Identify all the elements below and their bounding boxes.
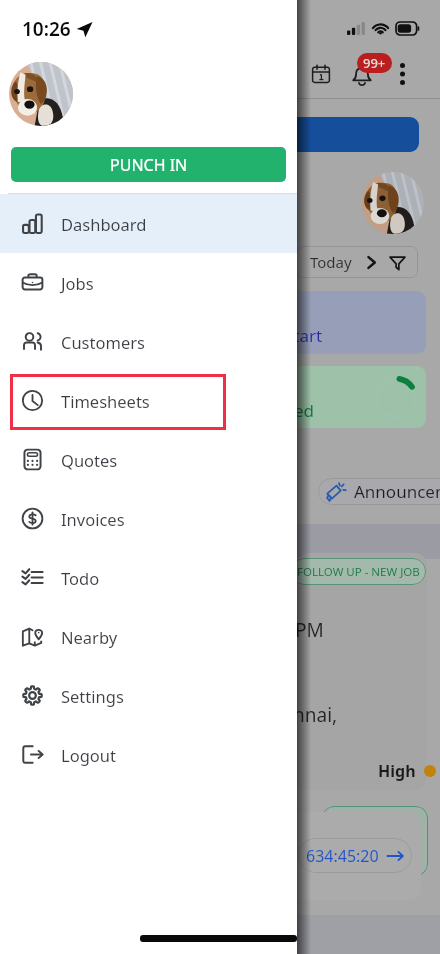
staticText: Quotes	[61, 449, 118, 471]
button[interactable]: Todo	[0, 548, 297, 607]
staticText: 10:26	[22, 16, 71, 42]
button[interactable]: Today	[296, 246, 418, 278]
staticText: PM	[295, 617, 324, 643]
staticText: Settings	[61, 685, 124, 707]
staticText: Todo	[61, 567, 100, 589]
button[interactable]: PUNCH IN	[11, 147, 286, 182]
button[interactable]: Calendar	[308, 61, 334, 87]
staticText: PUNCH IN	[110, 154, 188, 176]
button[interactable]: 634:45:20	[298, 838, 412, 873]
staticText: nnai,	[293, 702, 338, 728]
button[interactable]: Settings	[0, 666, 297, 725]
button[interactable]: Dashboard	[0, 194, 297, 253]
staticText: Dashboard	[61, 213, 147, 235]
button[interactable]: Notifications	[348, 61, 376, 89]
staticText: Jobs	[61, 272, 94, 294]
staticText: Start	[284, 324, 323, 347]
button[interactable]: Quotes	[0, 430, 297, 489]
button[interactable]: Timesheets	[0, 371, 297, 430]
staticText: ed	[294, 399, 315, 422]
staticText: FOLLOW UP - NEW JOB	[297, 564, 420, 580]
staticText: High	[378, 760, 416, 782]
button[interactable]: Customers	[0, 312, 297, 371]
staticText: 634:45:20	[306, 845, 379, 867]
button[interactable]: Jobs	[0, 253, 297, 312]
button[interactable]: Nearby	[0, 607, 297, 666]
staticText: Logout	[61, 744, 116, 766]
staticText: Today	[310, 252, 352, 272]
button[interactable]: More options	[392, 60, 412, 88]
staticText: Timesheets	[61, 390, 150, 412]
staticText: Announcement	[354, 480, 440, 503]
staticText: Nearby	[61, 626, 118, 648]
staticText: Customers	[61, 331, 145, 353]
button[interactable]: Logout	[0, 725, 297, 784]
staticText: 99+	[363, 54, 386, 72]
button[interactable]: Invoices	[0, 489, 297, 548]
button[interactable]: Announcement	[318, 478, 440, 505]
staticText: Invoices	[61, 508, 125, 530]
